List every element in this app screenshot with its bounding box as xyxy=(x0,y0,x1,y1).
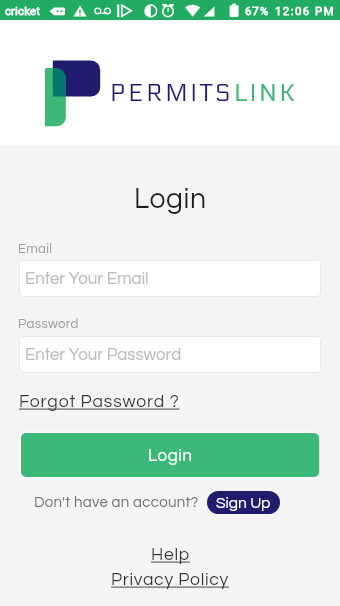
staticText: Enter Your Email xyxy=(25,270,149,287)
button[interactable]: Enter Your Password xyxy=(19,336,321,373)
staticText: Email xyxy=(18,242,53,256)
staticText: Help xyxy=(151,546,190,564)
button[interactable]: Forgot Password ? xyxy=(19,393,180,411)
button[interactable]: Help xyxy=(151,546,190,564)
button[interactable]: Login xyxy=(21,433,319,477)
staticText: Login xyxy=(134,185,207,214)
staticText: Forgot Password ? xyxy=(19,393,180,411)
button[interactable]: Privacy Policy xyxy=(111,571,229,589)
staticText: Password xyxy=(18,317,79,331)
button[interactable]: Enter Your Email xyxy=(19,260,321,297)
button[interactable]: Sign Up xyxy=(207,491,280,514)
staticText: PERMITS xyxy=(110,79,234,108)
staticText: Login xyxy=(148,447,193,464)
staticText: LINK xyxy=(234,79,298,108)
staticText: Don't have an account? xyxy=(34,495,199,510)
staticText: Enter Your Password xyxy=(25,346,182,363)
staticText: 12:06 PM xyxy=(275,4,335,17)
staticText: 67% xyxy=(245,4,270,17)
staticText: cricket xyxy=(5,4,41,17)
staticText: Sign Up xyxy=(216,495,271,511)
staticText: Privacy Policy xyxy=(111,571,229,589)
